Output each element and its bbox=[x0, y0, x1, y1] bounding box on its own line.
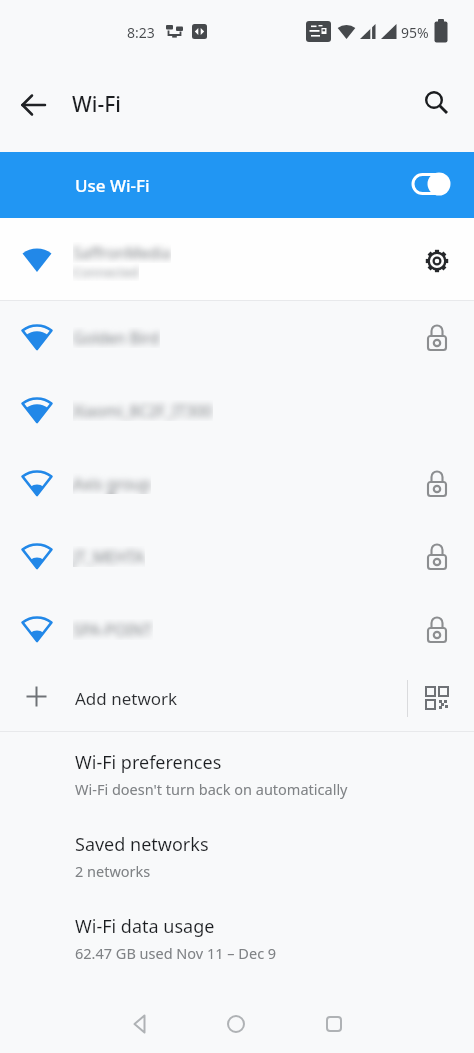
button[interactable]: Saved networks bbox=[0, 813, 474, 895]
staticText: 62.47 GB used Nov 11 – Dec 9 bbox=[75, 943, 277, 963]
staticText: SaffronMedia bbox=[73, 242, 171, 263]
staticText: 8:23 bbox=[127, 23, 155, 42]
button[interactable] bbox=[420, 681, 454, 715]
staticText: 95% bbox=[401, 23, 429, 42]
staticText: Axis group bbox=[73, 473, 151, 494]
button[interactable]: SPA-POINT bbox=[0, 593, 474, 666]
button[interactable]: Add network bbox=[0, 666, 474, 731]
button[interactable]: Wi-Fi preferences bbox=[0, 731, 474, 813]
staticText: SPA-POINT bbox=[73, 619, 153, 640]
button[interactable]: Axis group bbox=[0, 447, 474, 520]
button[interactable]: Xiaomi_8C2F_IT300 bbox=[0, 374, 474, 447]
button[interactable] bbox=[410, 78, 460, 126]
staticText: Wi-Fi bbox=[72, 90, 121, 119]
staticText: Add network bbox=[75, 687, 178, 710]
staticText: Golden Bird bbox=[73, 327, 160, 348]
button[interactable]: JT_MEHTA bbox=[0, 520, 474, 593]
staticText: Wi-Fi preferences bbox=[75, 750, 222, 775]
staticText: 2 networks bbox=[75, 861, 151, 881]
button[interactable]: Wi-Fi data usage bbox=[0, 895, 474, 977]
button[interactable] bbox=[310, 1000, 358, 1048]
staticText: Use Wi-Fi bbox=[75, 174, 150, 197]
button[interactable]: Use Wi-Fi bbox=[0, 152, 474, 218]
staticText: Xiaomi_8C2F_IT300 bbox=[73, 400, 213, 421]
staticText: Wi-Fi doesn't turn back on automatically bbox=[75, 779, 348, 799]
button[interactable] bbox=[10, 81, 58, 129]
button[interactable] bbox=[116, 1000, 164, 1048]
button[interactable] bbox=[212, 1000, 260, 1048]
staticText: JT_MEHTA bbox=[73, 546, 145, 567]
staticText: Wi-Fi data usage bbox=[75, 914, 215, 939]
staticText: Saved networks bbox=[75, 832, 209, 857]
button[interactable]: Golden Bird bbox=[0, 301, 474, 374]
button[interactable]: SaffronMedia bbox=[0, 218, 474, 301]
staticText: Connected bbox=[73, 263, 139, 281]
